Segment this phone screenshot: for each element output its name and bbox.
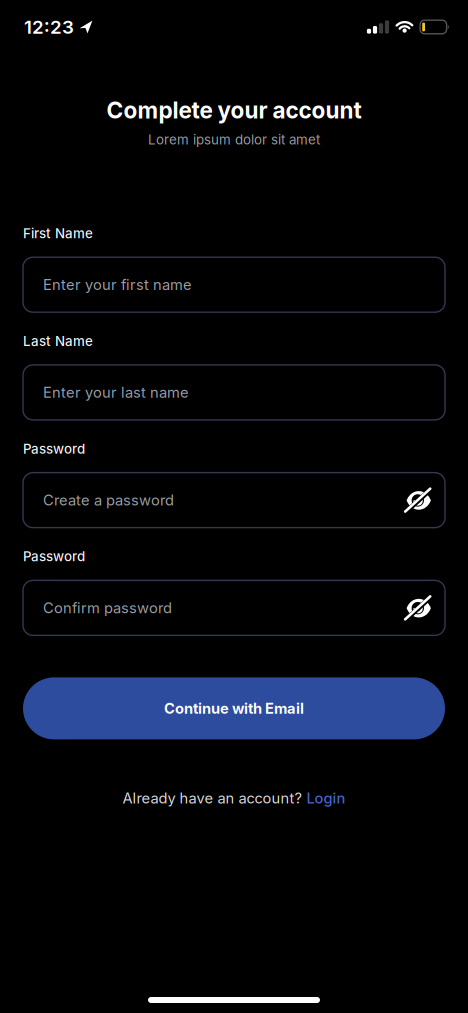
staticText: Last Name	[23, 333, 93, 349]
staticText: Create a password	[43, 491, 174, 509]
button[interactable]: Enter your last name	[23, 365, 445, 420]
button[interactable]: Login	[306, 789, 345, 807]
staticText: Login	[306, 789, 345, 807]
staticText: Enter your first name	[43, 276, 192, 293]
button[interactable]: Continue with Email	[23, 677, 445, 739]
staticText: Complete your account	[106, 97, 361, 124]
button[interactable]: Enter your first name	[23, 257, 445, 312]
staticText: Password	[23, 441, 85, 457]
button[interactable]: Create a password	[23, 473, 445, 528]
staticText: 12:23	[24, 16, 74, 38]
staticText: Enter your last name	[43, 384, 189, 401]
button[interactable]: Confirm password	[23, 580, 445, 635]
staticText: First Name	[23, 225, 93, 241]
staticText: Continue with Email	[164, 700, 304, 717]
staticText: Confirm password	[43, 599, 172, 616]
staticText: Already have an account?	[122, 789, 301, 807]
staticText: Lorem ipsum dolor sit amet	[148, 132, 320, 147]
staticText: Password	[23, 549, 85, 564]
